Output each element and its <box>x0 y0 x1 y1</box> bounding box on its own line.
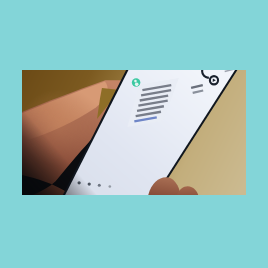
button[interactable]: Photo of a hand holding a phone <box>22 70 246 195</box>
